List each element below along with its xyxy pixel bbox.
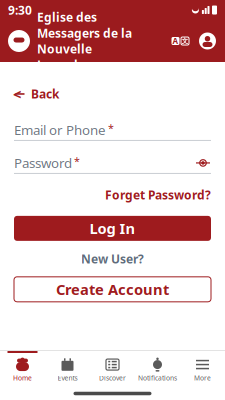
staticText: 文 bbox=[181, 37, 188, 45]
staticText: Create Account bbox=[56, 280, 169, 299]
staticText: Forget Password? bbox=[105, 187, 211, 203]
staticText: Home bbox=[13, 374, 32, 382]
button[interactable]: Create Account bbox=[14, 277, 211, 302]
button[interactable]: New User? bbox=[81, 248, 144, 270]
button[interactable]: Account bbox=[198, 31, 217, 50]
button[interactable]: Show password bbox=[195, 156, 211, 170]
button[interactable]: Translate bbox=[169, 35, 191, 47]
staticText: 9:30 bbox=[8, 2, 32, 18]
staticText: Password bbox=[14, 154, 72, 172]
staticText: Eglise des Messagers de la Nouvelle Jeru… bbox=[37, 9, 132, 73]
staticText: Back bbox=[31, 86, 59, 102]
staticText: More bbox=[194, 374, 211, 382]
staticText: * bbox=[108, 121, 114, 135]
staticText: Email or Phone bbox=[14, 121, 106, 139]
staticText: < bbox=[13, 84, 21, 104]
button[interactable]: Events bbox=[45, 351, 90, 387]
button[interactable]: Forget Password? bbox=[105, 184, 211, 206]
staticText: Events bbox=[57, 374, 77, 382]
staticText: Notifications bbox=[138, 374, 177, 382]
button[interactable]: Home bbox=[0, 351, 45, 387]
button[interactable]: < bbox=[14, 82, 59, 106]
staticText: Discover bbox=[99, 374, 126, 382]
button[interactable]: Discover bbox=[90, 351, 135, 387]
staticText: Log In bbox=[89, 219, 135, 238]
button[interactable]: Notifications bbox=[135, 351, 180, 387]
staticText: * bbox=[74, 154, 80, 168]
staticText: A bbox=[172, 36, 178, 46]
staticText: New User? bbox=[81, 251, 144, 267]
button[interactable]: More bbox=[180, 351, 225, 387]
button[interactable]: Log In bbox=[14, 216, 211, 241]
